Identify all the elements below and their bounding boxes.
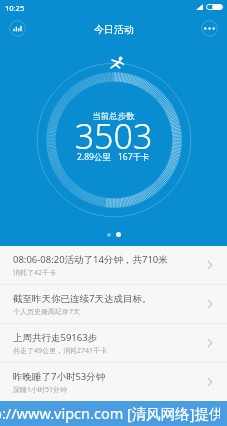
staticText: 当前总步数 (0, 111, 227, 122)
button[interactable]: 截至昨天你已连续7天达成目标。 (0, 285, 227, 323)
staticText: 深睡1小时51分钟 (13, 385, 68, 395)
staticText: p://www.vipcn.com [清风网络]提供 (0, 403, 220, 423)
button[interactable]: More options (201, 20, 218, 37)
staticText: 个人历史最高纪录7天 (13, 307, 81, 317)
staticText: 2.89公里 (77, 151, 111, 163)
staticText: 10:25 (5, 3, 25, 13)
staticText: 167千卡 (118, 151, 150, 163)
button[interactable]: 上周共行走59163步 (0, 324, 227, 362)
staticText: 消耗了42千卡 (13, 268, 57, 278)
staticText: 3503 (0, 113, 227, 159)
button[interactable]: Statistics (9, 20, 26, 37)
staticText: 截至昨天你已连续7天达成目标。 (13, 292, 152, 305)
staticText: 上周共行走59163步 (13, 331, 98, 344)
staticText: 昨晚睡了7小时53分钟 (13, 370, 106, 383)
button[interactable]: 昨晚睡了7小时53分钟 (0, 363, 227, 401)
staticText: 08:06-08:20活动了14分钟，共710米 (13, 253, 168, 266)
staticText: 今日活动 (94, 23, 134, 36)
staticText: 共走了49公里，消耗2741千卡 (13, 346, 108, 356)
button[interactable]: 08:06-08:20活动了14分钟，共710米 (0, 246, 227, 284)
